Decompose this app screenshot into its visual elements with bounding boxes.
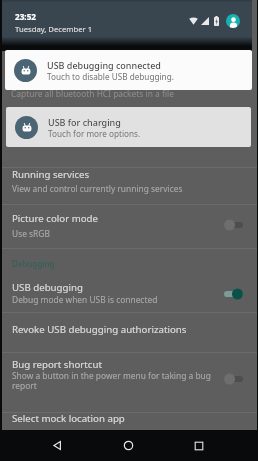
button[interactable]: USB debugging connected xyxy=(5,50,252,90)
staticText: Debugging xyxy=(12,258,55,269)
staticText: Touch for more options. xyxy=(48,128,141,139)
staticText: Use sRGB xyxy=(12,228,50,239)
button[interactable]: Home xyxy=(112,430,144,461)
staticText: Capture all bluetooth HCI packets in a f… xyxy=(11,88,174,99)
staticText: Touch to disable USB debugging. xyxy=(47,71,174,82)
button[interactable]: Account xyxy=(226,14,240,28)
staticText: Bug report shortcut xyxy=(12,358,102,371)
staticText: USB debugging connected xyxy=(47,59,161,71)
button[interactable]: USB for charging xyxy=(6,107,251,147)
staticText: Picture color mode xyxy=(12,212,99,225)
staticText: Debug mode when USB is connected xyxy=(12,294,158,305)
staticText: Revoke USB debugging authorizations xyxy=(12,323,187,336)
button[interactable]: Recent apps xyxy=(183,430,215,461)
staticText: USB debugging xyxy=(12,281,83,294)
staticText: 23:52 xyxy=(15,11,37,22)
staticText: USB for charging xyxy=(48,116,121,128)
staticText: Show a button in the power menu for taki… xyxy=(12,370,212,391)
button[interactable]: Back xyxy=(41,430,73,461)
staticText: Select mock location app xyxy=(12,412,125,425)
staticText: View and control currently running servi… xyxy=(12,183,183,194)
staticText: Running services xyxy=(12,168,90,181)
staticText: Tuesday, December 1 xyxy=(15,24,93,34)
